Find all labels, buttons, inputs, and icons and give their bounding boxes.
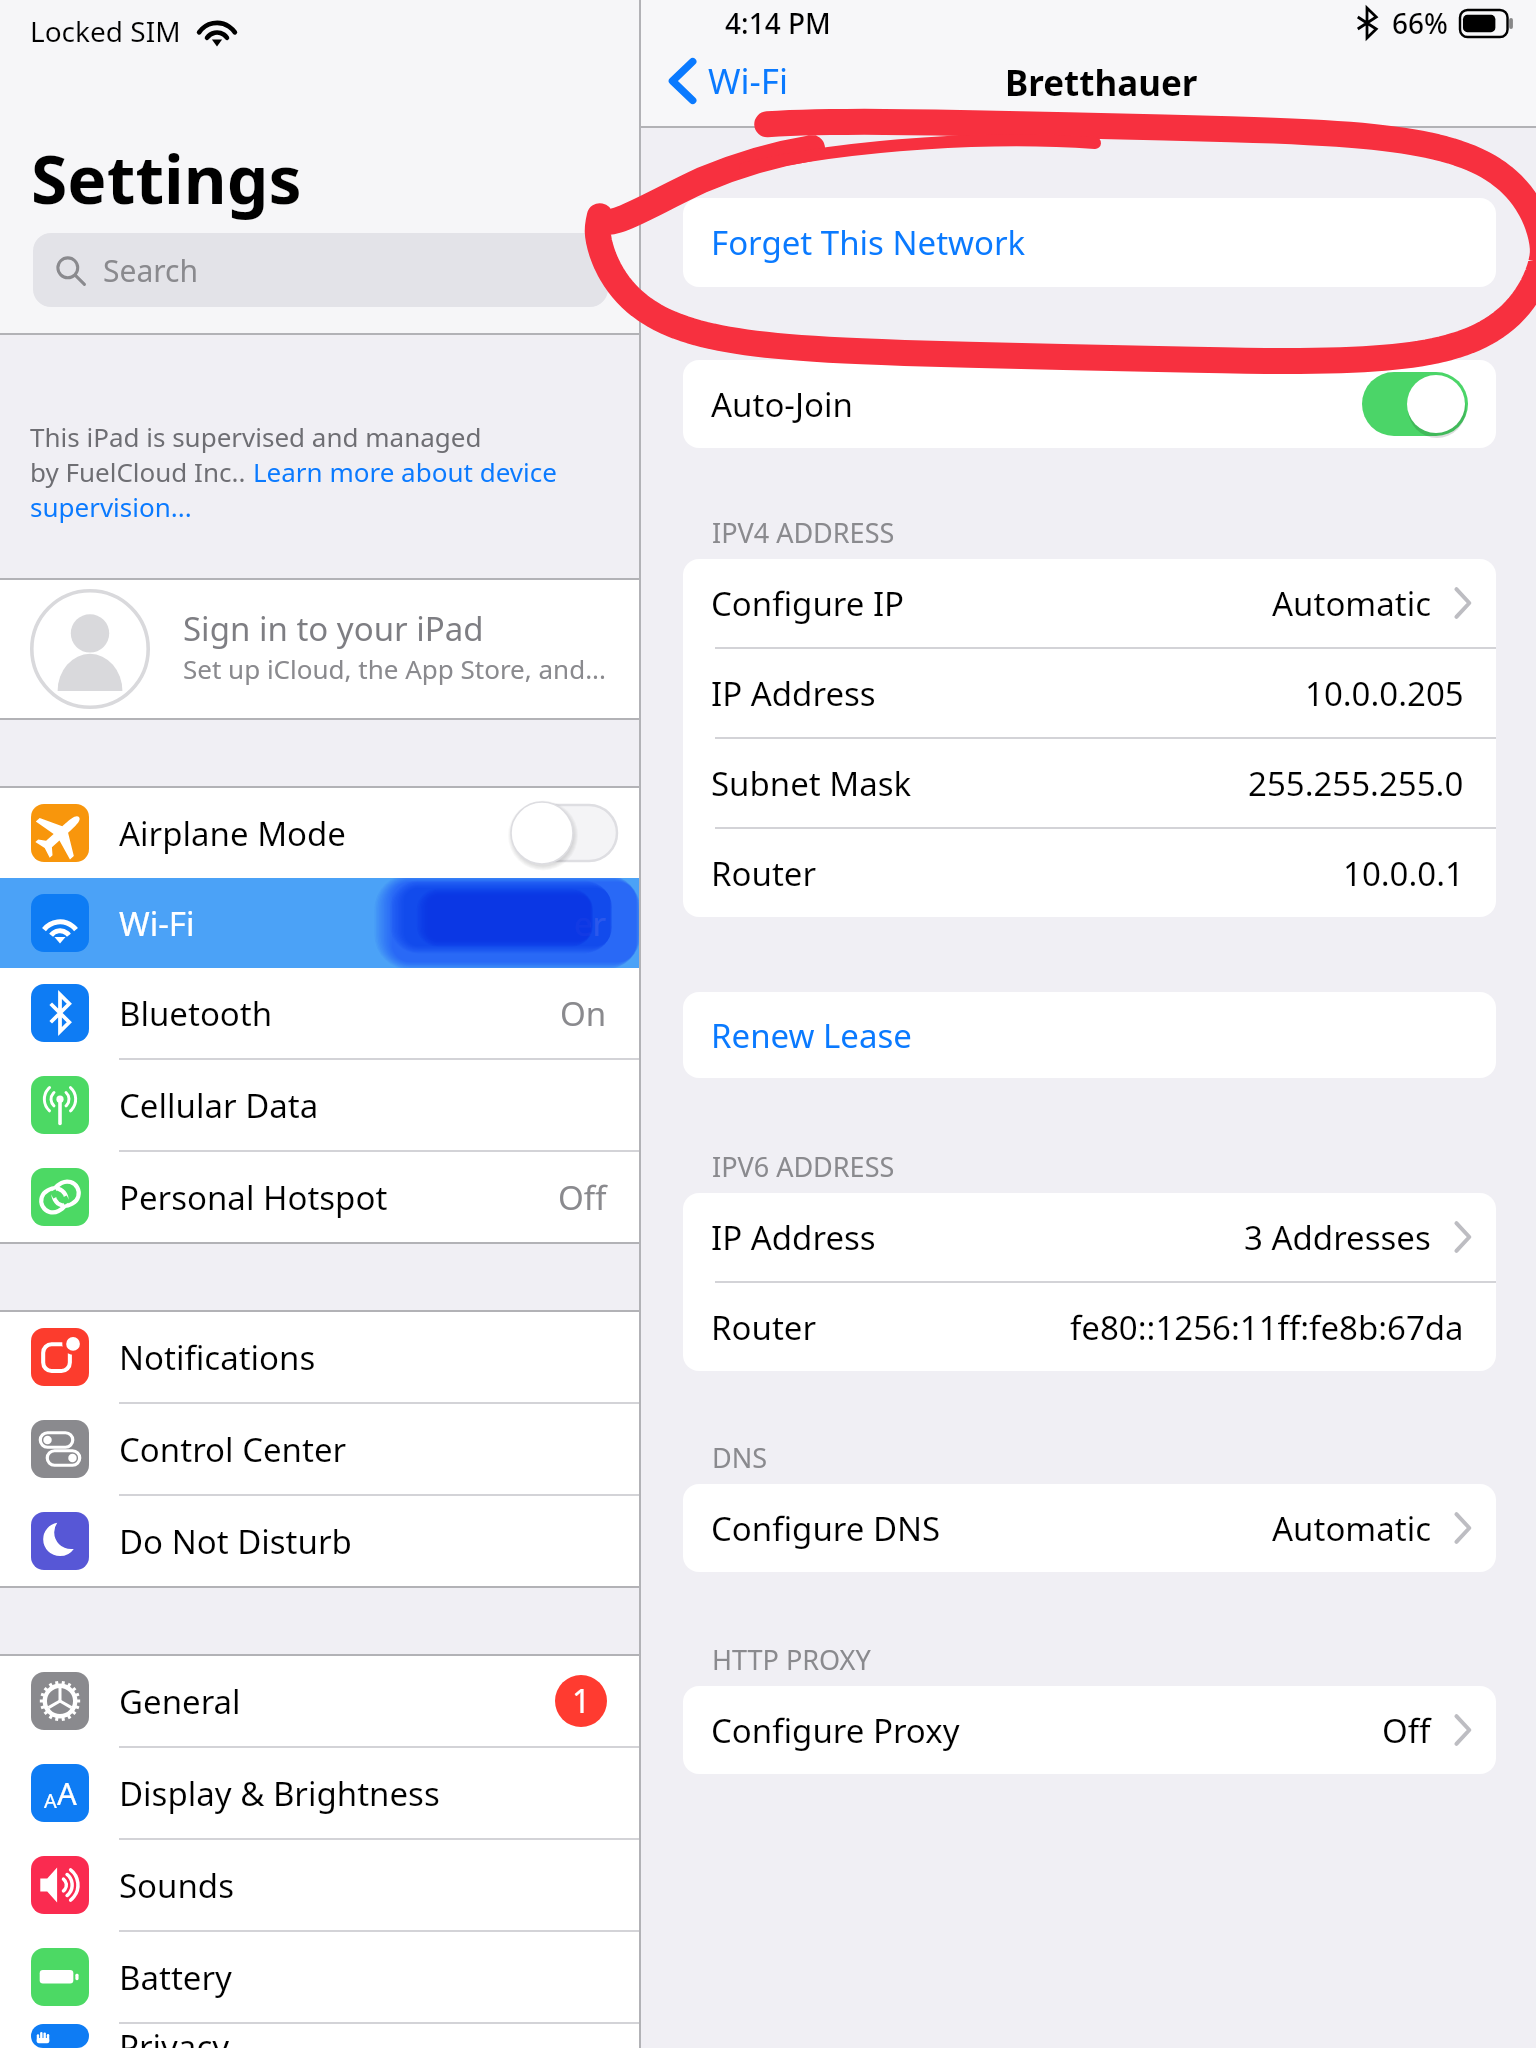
button[interactable]: Auto-Join — [683, 360, 1496, 448]
staticText: General — [119, 1679, 241, 1724]
button[interactable]: Forget This Network — [683, 198, 1496, 287]
button[interactable]: IP Address — [683, 1193, 1496, 1281]
staticText: Configure DNS — [711, 1506, 941, 1551]
staticText: Off — [1382, 1708, 1431, 1753]
button[interactable]: Sounds — [0, 1840, 639, 1930]
staticText: 4:14 PM — [725, 4, 831, 42]
button[interactable]: Control Center — [0, 1404, 639, 1494]
staticText: Airplane Mode — [119, 811, 346, 856]
staticText: 10.0.0.1 — [1343, 851, 1464, 896]
button[interactable]: Search settings — [33, 233, 608, 307]
staticText: 3 Addresses — [1244, 1215, 1431, 1260]
staticText: IP Address — [711, 1215, 876, 1260]
staticText: Forget This Network — [711, 220, 1026, 265]
staticText: A — [57, 1772, 77, 1814]
staticText: Automatic — [1272, 581, 1431, 626]
staticText: Learn more about device — [253, 454, 557, 489]
button[interactable]: supervision... — [30, 489, 192, 524]
button[interactable]: Auto-Join on — [1362, 372, 1468, 436]
staticText: er — [574, 901, 607, 946]
staticText: IPV6 ADDRESS — [712, 1148, 895, 1185]
staticText: Renew Lease — [711, 1013, 912, 1058]
staticText: IP Address — [711, 671, 876, 716]
button[interactable]: Renew Lease — [683, 992, 1496, 1078]
staticText: Bretthauer — [1005, 59, 1198, 107]
staticText: Sign in to your iPad — [183, 606, 484, 651]
staticText: Personal Hotspot — [119, 1175, 388, 1220]
staticText: Notifications — [119, 1335, 316, 1380]
button[interactable]: Router — [683, 829, 1496, 917]
button[interactable]: Configure Proxy — [683, 1686, 1496, 1774]
staticText: by FuelCloud Inc.. — [30, 454, 253, 489]
staticText: A — [44, 1787, 57, 1814]
staticText: Router — [711, 1305, 817, 1350]
staticText: Set up iCloud, the App Store, and... — [183, 651, 607, 686]
staticText: 10.0.0.205 — [1305, 671, 1464, 716]
button[interactable]: IP Address — [683, 649, 1496, 737]
button[interactable]: Privacy — [0, 2024, 639, 2048]
button[interactable]: Airplane Mode off — [511, 801, 617, 865]
staticText: Display & Brightness — [119, 1771, 440, 1816]
button[interactable]: Bluetooth — [0, 968, 639, 1058]
staticText: Battery — [119, 1955, 232, 2000]
staticText: Wi-Fi — [119, 901, 195, 946]
button[interactable]: Configure IP — [683, 559, 1496, 647]
button[interactable]: General — [0, 1656, 639, 1746]
button[interactable]: Wi-Fi — [0, 878, 639, 968]
staticText: Router — [711, 851, 817, 896]
staticText: Locked SIM — [30, 12, 181, 50]
staticText: Cellular Data — [119, 1083, 319, 1128]
staticText: Subnet Mask — [711, 761, 912, 806]
button[interactable]: Cellular Data — [0, 1060, 639, 1150]
button[interactable]: Back to Wi-Fi — [668, 57, 789, 105]
staticText: Search — [103, 250, 198, 291]
staticText: HTTP PROXY — [712, 1641, 871, 1678]
staticText: Configure Proxy — [711, 1708, 960, 1753]
staticText: This iPad is supervised and managed — [30, 419, 482, 454]
staticText: 1 — [572, 1679, 591, 1723]
staticText: Wi-Fi — [708, 57, 789, 105]
button[interactable]: Airplane Mode — [0, 788, 639, 878]
staticText: On — [560, 991, 607, 1036]
button[interactable]: Sign in to your iPad — [0, 580, 639, 718]
staticText: Do Not Disturb — [119, 1519, 352, 1564]
button[interactable]: Battery — [0, 1932, 639, 2022]
staticText: Automatic — [1272, 1506, 1431, 1551]
staticText: fe80::1256:11ff:fe8b:67da — [1070, 1305, 1464, 1350]
button[interactable]: Router — [683, 1283, 1496, 1371]
staticText: Configure IP — [711, 581, 905, 626]
staticText: Bluetooth — [119, 991, 273, 1036]
button[interactable]: Subnet Mask — [683, 739, 1496, 827]
staticText: Settings — [31, 133, 302, 223]
staticText: 66% — [1392, 4, 1448, 42]
staticText: Control Center — [119, 1427, 347, 1472]
button[interactable]: Notifications — [0, 1312, 639, 1402]
button[interactable]: Configure DNS — [683, 1484, 1496, 1572]
button[interactable]: A — [0, 1748, 639, 1838]
staticText: Off — [558, 1175, 607, 1220]
staticText: 255.255.255.0 — [1248, 761, 1464, 806]
button[interactable]: Personal Hotspot — [0, 1152, 639, 1242]
staticText: DNS — [712, 1439, 768, 1476]
staticText: Privacy — [119, 2024, 230, 2048]
staticText: IPV4 ADDRESS — [712, 514, 895, 551]
button[interactable]: Do Not Disturb — [0, 1496, 639, 1586]
staticText: Sounds — [119, 1863, 234, 1908]
staticText: Auto-Join — [711, 382, 853, 427]
